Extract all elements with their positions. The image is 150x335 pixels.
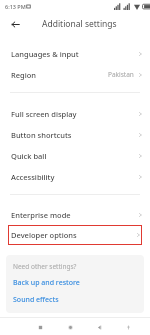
staticText: Pakistan <box>108 70 134 79</box>
staticText: Quick ball <box>11 151 47 161</box>
button[interactable]: Back <box>7 16 23 32</box>
button[interactable]: Text cursor <box>120 319 136 335</box>
button[interactable]: Recents <box>32 319 48 335</box>
button[interactable]: Languages & input <box>0 43 150 64</box>
staticText: Enterprise mode <box>11 210 71 220</box>
staticText: Accessibility <box>11 172 55 182</box>
staticText: 6:13 PM <box>5 3 26 10</box>
button[interactable]: Back <box>91 319 107 335</box>
button[interactable]: Enterprise mode <box>0 204 150 225</box>
staticText: Developer options <box>11 230 77 240</box>
staticText: Button shortcuts <box>11 130 72 140</box>
button[interactable]: Region <box>0 64 150 85</box>
staticText: Need other settings? <box>13 262 77 271</box>
staticText: Sound effects <box>13 295 59 305</box>
staticText: Additional settings <box>42 18 117 30</box>
staticText: Region <box>11 70 37 80</box>
button[interactable]: Back up and restore <box>13 278 80 288</box>
button[interactable]: Button shortcuts <box>0 124 150 145</box>
button[interactable]: Sound effects <box>13 295 59 305</box>
button[interactable]: Full screen display <box>0 103 150 124</box>
button[interactable]: Home <box>62 319 78 335</box>
staticText: Full screen display <box>11 109 77 119</box>
button[interactable]: Quick ball <box>0 145 150 166</box>
staticText: Languages & input <box>11 49 79 59</box>
staticText: Back up and restore <box>13 278 80 288</box>
button[interactable]: Accessibility <box>0 166 150 187</box>
button[interactable]: Developer options <box>8 225 142 245</box>
